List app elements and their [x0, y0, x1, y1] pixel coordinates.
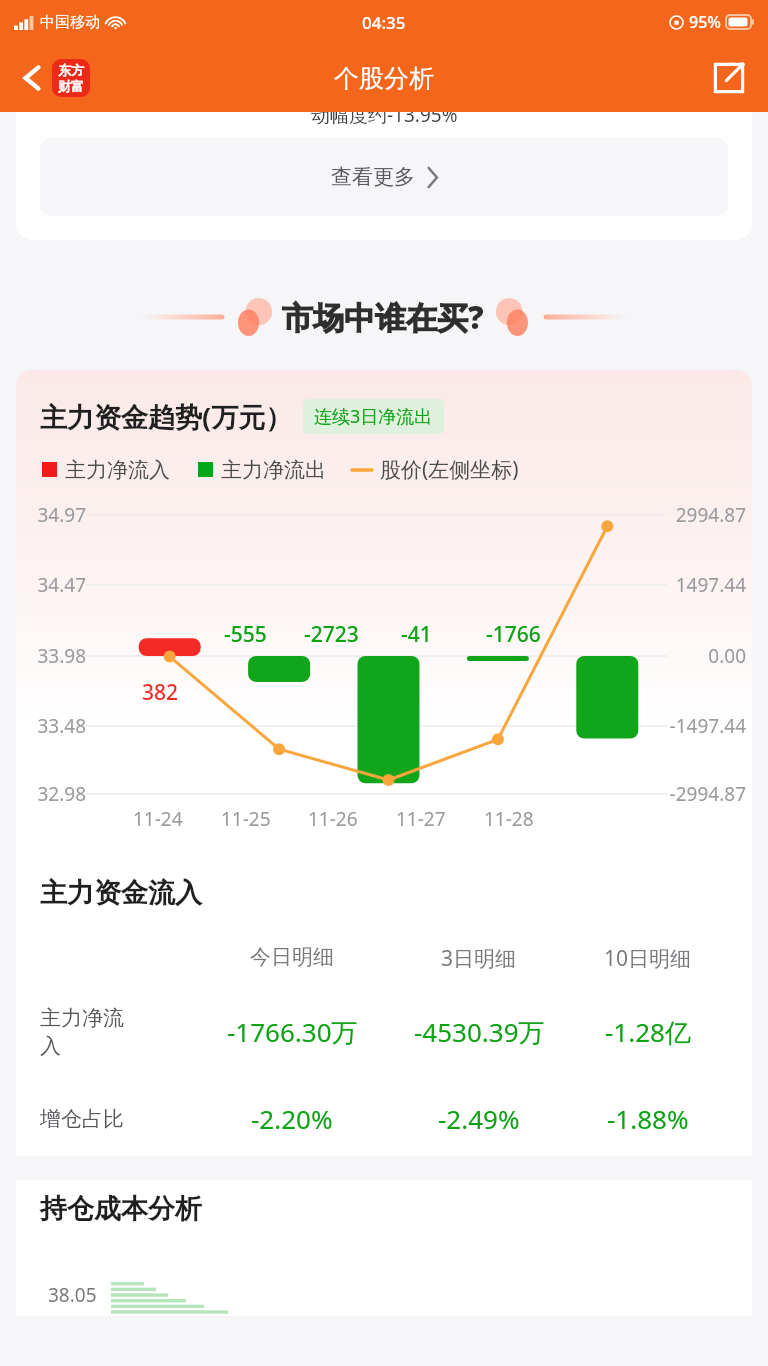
staticText: 11-24	[133, 806, 183, 832]
staticText: -2994.87	[646, 781, 746, 807]
staticText: 主力净流入	[65, 457, 170, 483]
staticText: -2723	[304, 620, 359, 649]
staticText: 33.98	[24, 643, 86, 669]
staticText: 38.05	[48, 1282, 97, 1308]
other: Back	[22, 64, 42, 92]
staticText: -1.28亿	[605, 1014, 691, 1050]
staticText: 32.98	[24, 781, 86, 807]
staticText: -2.20%	[251, 1101, 333, 1136]
staticText: 34.97	[24, 502, 86, 528]
staticText: -41	[401, 620, 432, 649]
staticText: -1497.44	[646, 713, 746, 739]
staticText: 主力资金流入	[40, 876, 202, 910]
staticText: 11-27	[396, 806, 446, 832]
staticText: 中国移动	[40, 13, 100, 32]
staticText: 0.00	[646, 643, 746, 669]
staticText: 04:35	[362, 11, 406, 34]
staticText: 动幅度约-13.95%	[311, 112, 458, 128]
staticText: 11-25	[221, 806, 271, 832]
button[interactable]: 查看更多	[40, 138, 728, 216]
staticText: 主力净流 入	[40, 1005, 124, 1059]
staticText: -1.88%	[607, 1101, 689, 1136]
staticText: 33.48	[24, 713, 86, 739]
staticText: 连续3日净流出	[314, 404, 433, 429]
button[interactable]: Share	[708, 57, 750, 99]
staticText: -2.49%	[438, 1101, 520, 1136]
staticText: -1766	[486, 620, 541, 649]
staticText: 95%	[689, 11, 721, 33]
button[interactable]: Back	[18, 55, 94, 101]
staticText: 主力资金趋势(万元）	[40, 398, 293, 435]
staticText: 查看更多	[331, 164, 415, 190]
staticText: 382	[142, 678, 179, 707]
staticText: 10日明细	[604, 944, 692, 973]
staticText: 财富	[58, 78, 84, 94]
staticText: 主力净流出	[221, 457, 326, 483]
staticText: 3日明细	[441, 944, 517, 973]
staticText: 2994.87	[646, 502, 746, 528]
staticText: 11-26	[308, 806, 358, 832]
staticText: 市场中谁在买?	[282, 296, 484, 338]
staticText: 个股分析	[334, 63, 434, 94]
staticText: 1497.44	[646, 572, 746, 598]
staticText: 今日明细	[250, 944, 334, 970]
staticText: 东方	[58, 62, 84, 78]
staticText: -4530.39万	[414, 1014, 545, 1050]
staticText: 股价(左侧坐标)	[380, 455, 519, 484]
staticText: -1766.30万	[227, 1014, 358, 1050]
staticText: 持仓成本分析	[40, 1192, 202, 1226]
staticText: 增仓占比	[40, 1106, 124, 1132]
staticText: -555	[224, 620, 267, 649]
staticText: 34.47	[24, 572, 86, 598]
staticText: 11-28	[484, 806, 534, 832]
